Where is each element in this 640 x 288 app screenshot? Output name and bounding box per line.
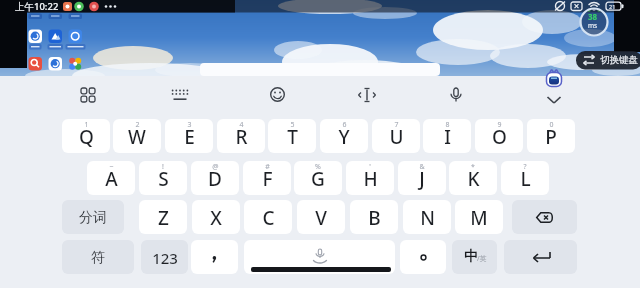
staticText: G bbox=[311, 166, 325, 192]
button[interactable] bbox=[354, 83, 380, 109]
button[interactable]: 分词 bbox=[62, 200, 124, 234]
button[interactable]: 符 bbox=[62, 240, 134, 274]
staticText: 中 bbox=[464, 248, 478, 266]
button[interactable]: B bbox=[350, 200, 398, 234]
button[interactable] bbox=[400, 240, 446, 274]
staticText: N bbox=[420, 205, 435, 231]
staticText: V bbox=[315, 205, 327, 231]
staticText: 分词 bbox=[79, 209, 107, 227]
button[interactable]: O bbox=[475, 119, 523, 153]
staticText: D bbox=[208, 166, 222, 192]
button[interactable] bbox=[504, 240, 577, 274]
button[interactable]: L bbox=[501, 161, 549, 195]
staticText: E bbox=[184, 124, 195, 150]
button[interactable]: E bbox=[165, 119, 213, 153]
staticText: # bbox=[265, 162, 270, 172]
button[interactable]: 123 bbox=[141, 240, 188, 274]
button[interactable]: I bbox=[423, 119, 471, 153]
button[interactable]: V bbox=[297, 200, 345, 234]
button[interactable] bbox=[244, 240, 395, 274]
staticText: 符 bbox=[91, 249, 105, 267]
button[interactable] bbox=[265, 83, 291, 109]
button[interactable]: R bbox=[217, 119, 265, 153]
staticText: 9 bbox=[497, 120, 502, 130]
staticText: 3 bbox=[187, 120, 192, 130]
staticText: Y bbox=[338, 124, 350, 150]
button[interactable]: T bbox=[268, 119, 316, 153]
button[interactable]: P bbox=[527, 119, 575, 153]
button[interactable]: Q bbox=[62, 119, 110, 153]
button[interactable]: A bbox=[87, 161, 135, 195]
button[interactable]: N bbox=[403, 200, 451, 234]
staticText: 切换键盘 bbox=[600, 54, 638, 66]
button[interactable]: C bbox=[244, 200, 292, 234]
staticText: J bbox=[419, 166, 425, 192]
button[interactable]: K bbox=[449, 161, 497, 195]
button[interactable]: 中 bbox=[452, 240, 497, 274]
button[interactable]: Z bbox=[139, 200, 187, 234]
staticText: 8 bbox=[445, 120, 450, 130]
staticText: I bbox=[444, 124, 451, 150]
staticText: S bbox=[158, 166, 169, 192]
staticText: & bbox=[419, 162, 425, 172]
staticText: P bbox=[545, 124, 557, 150]
staticText: C bbox=[262, 205, 275, 231]
staticText: K bbox=[467, 166, 480, 192]
button[interactable]: U bbox=[372, 119, 420, 153]
staticText: 38 bbox=[588, 11, 598, 22]
staticText: % bbox=[315, 162, 321, 172]
staticText: @ bbox=[212, 162, 219, 172]
staticText: M bbox=[470, 205, 488, 231]
staticText: ~ bbox=[109, 162, 114, 172]
staticText: U bbox=[389, 124, 404, 150]
button[interactable]: G bbox=[294, 161, 342, 195]
staticText: L bbox=[520, 166, 531, 192]
button[interactable]: M bbox=[455, 200, 503, 234]
staticText: R bbox=[235, 124, 248, 150]
button[interactable]: J bbox=[398, 161, 446, 195]
staticText: W bbox=[128, 124, 146, 150]
button[interactable] bbox=[443, 83, 469, 109]
staticText: ' bbox=[369, 162, 371, 172]
staticText: ? bbox=[523, 162, 527, 172]
button[interactable]: D bbox=[191, 161, 239, 195]
button[interactable]: H bbox=[346, 161, 394, 195]
button[interactable] bbox=[167, 83, 193, 109]
staticText: * bbox=[471, 162, 475, 172]
staticText: Z bbox=[158, 205, 169, 231]
staticText: 2 bbox=[135, 120, 140, 130]
staticText: 7 bbox=[394, 120, 399, 130]
button[interactable]: S bbox=[139, 161, 187, 195]
staticText: H bbox=[363, 166, 378, 192]
staticText: Q bbox=[79, 124, 94, 150]
staticText: ms bbox=[588, 21, 598, 30]
button[interactable]: X bbox=[192, 200, 240, 234]
staticText: 0 bbox=[549, 120, 554, 130]
staticText: 5 bbox=[290, 120, 295, 130]
button[interactable]: Y bbox=[320, 119, 368, 153]
staticText: 6 bbox=[342, 120, 347, 130]
staticText: A bbox=[105, 166, 118, 192]
button[interactable] bbox=[541, 83, 567, 109]
button[interactable] bbox=[75, 83, 101, 109]
staticText: T bbox=[287, 124, 298, 150]
staticText: F bbox=[262, 166, 273, 192]
button[interactable] bbox=[191, 240, 238, 274]
button[interactable]: 切换键盘 bbox=[576, 51, 640, 69]
staticText: ! bbox=[162, 162, 164, 172]
staticText: 1 bbox=[84, 120, 89, 130]
button[interactable] bbox=[512, 200, 577, 234]
staticText: 21 bbox=[609, 3, 616, 10]
staticText: /英 bbox=[477, 254, 487, 264]
staticText: 上午10:22 bbox=[15, 0, 59, 13]
button[interactable]: F bbox=[243, 161, 291, 195]
staticText: 123 bbox=[152, 248, 178, 268]
staticText: 4 bbox=[239, 120, 244, 130]
button[interactable]: W bbox=[113, 119, 161, 153]
staticText: B bbox=[368, 205, 381, 231]
staticText: X bbox=[210, 205, 222, 231]
staticText: O bbox=[492, 124, 507, 150]
